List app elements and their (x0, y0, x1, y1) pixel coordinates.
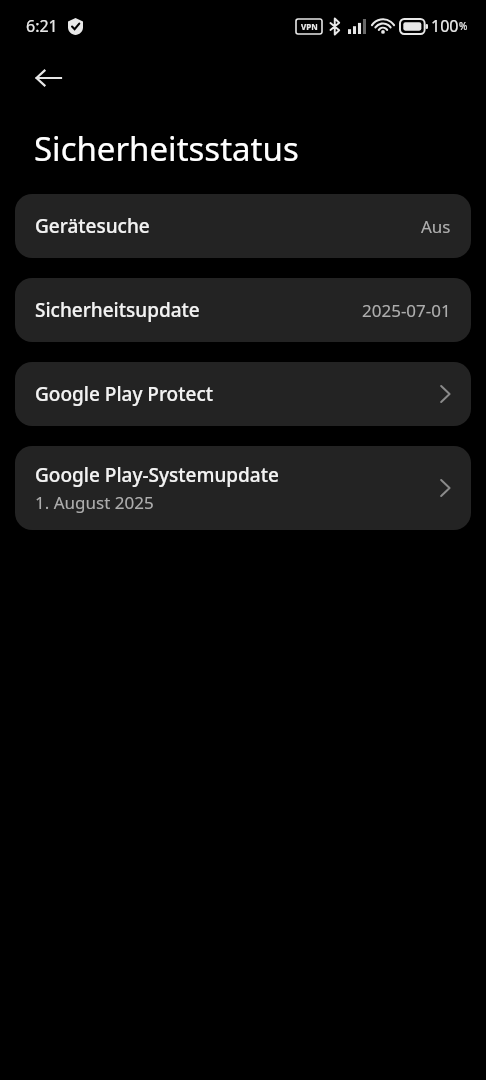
staticText: 2025-07-01 (362, 299, 451, 322)
staticText: 100 (431, 15, 459, 37)
staticText: Google Play Protect (35, 381, 213, 407)
button[interactable]: Zurück (22, 52, 74, 104)
button[interactable]: Sicherheitsupdate (15, 278, 471, 342)
button[interactable]: Google Play-Systemupdate (15, 446, 471, 530)
staticText: 6:21 (26, 15, 58, 37)
staticText: Aus (421, 215, 451, 238)
staticText: Sicherheitsupdate (35, 297, 200, 323)
staticText: Sicherheitsstatus (34, 126, 299, 171)
button[interactable]: Gerätesuche (15, 194, 471, 258)
staticText: Gerätesuche (35, 213, 150, 239)
staticText: VPN (301, 21, 318, 32)
staticText: 1. August 2025 (35, 491, 154, 514)
staticText: Google Play-Systemupdate (35, 462, 279, 488)
staticText: % (459, 19, 468, 33)
button[interactable]: Google Play Protect (15, 362, 471, 426)
